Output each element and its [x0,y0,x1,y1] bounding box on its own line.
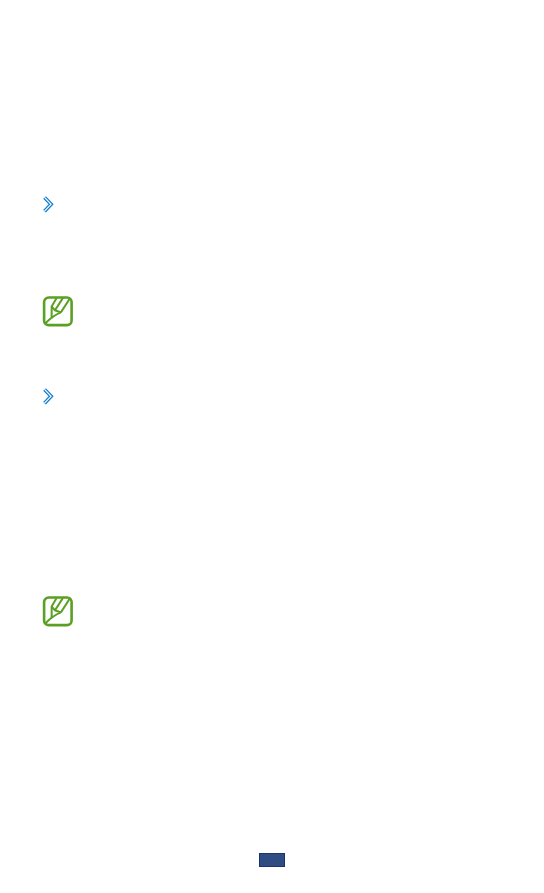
button[interactable]: Note [43,596,73,626]
button[interactable]: Next [43,196,59,216]
button[interactable]: Note [43,296,73,326]
button[interactable]: Next [43,388,59,408]
